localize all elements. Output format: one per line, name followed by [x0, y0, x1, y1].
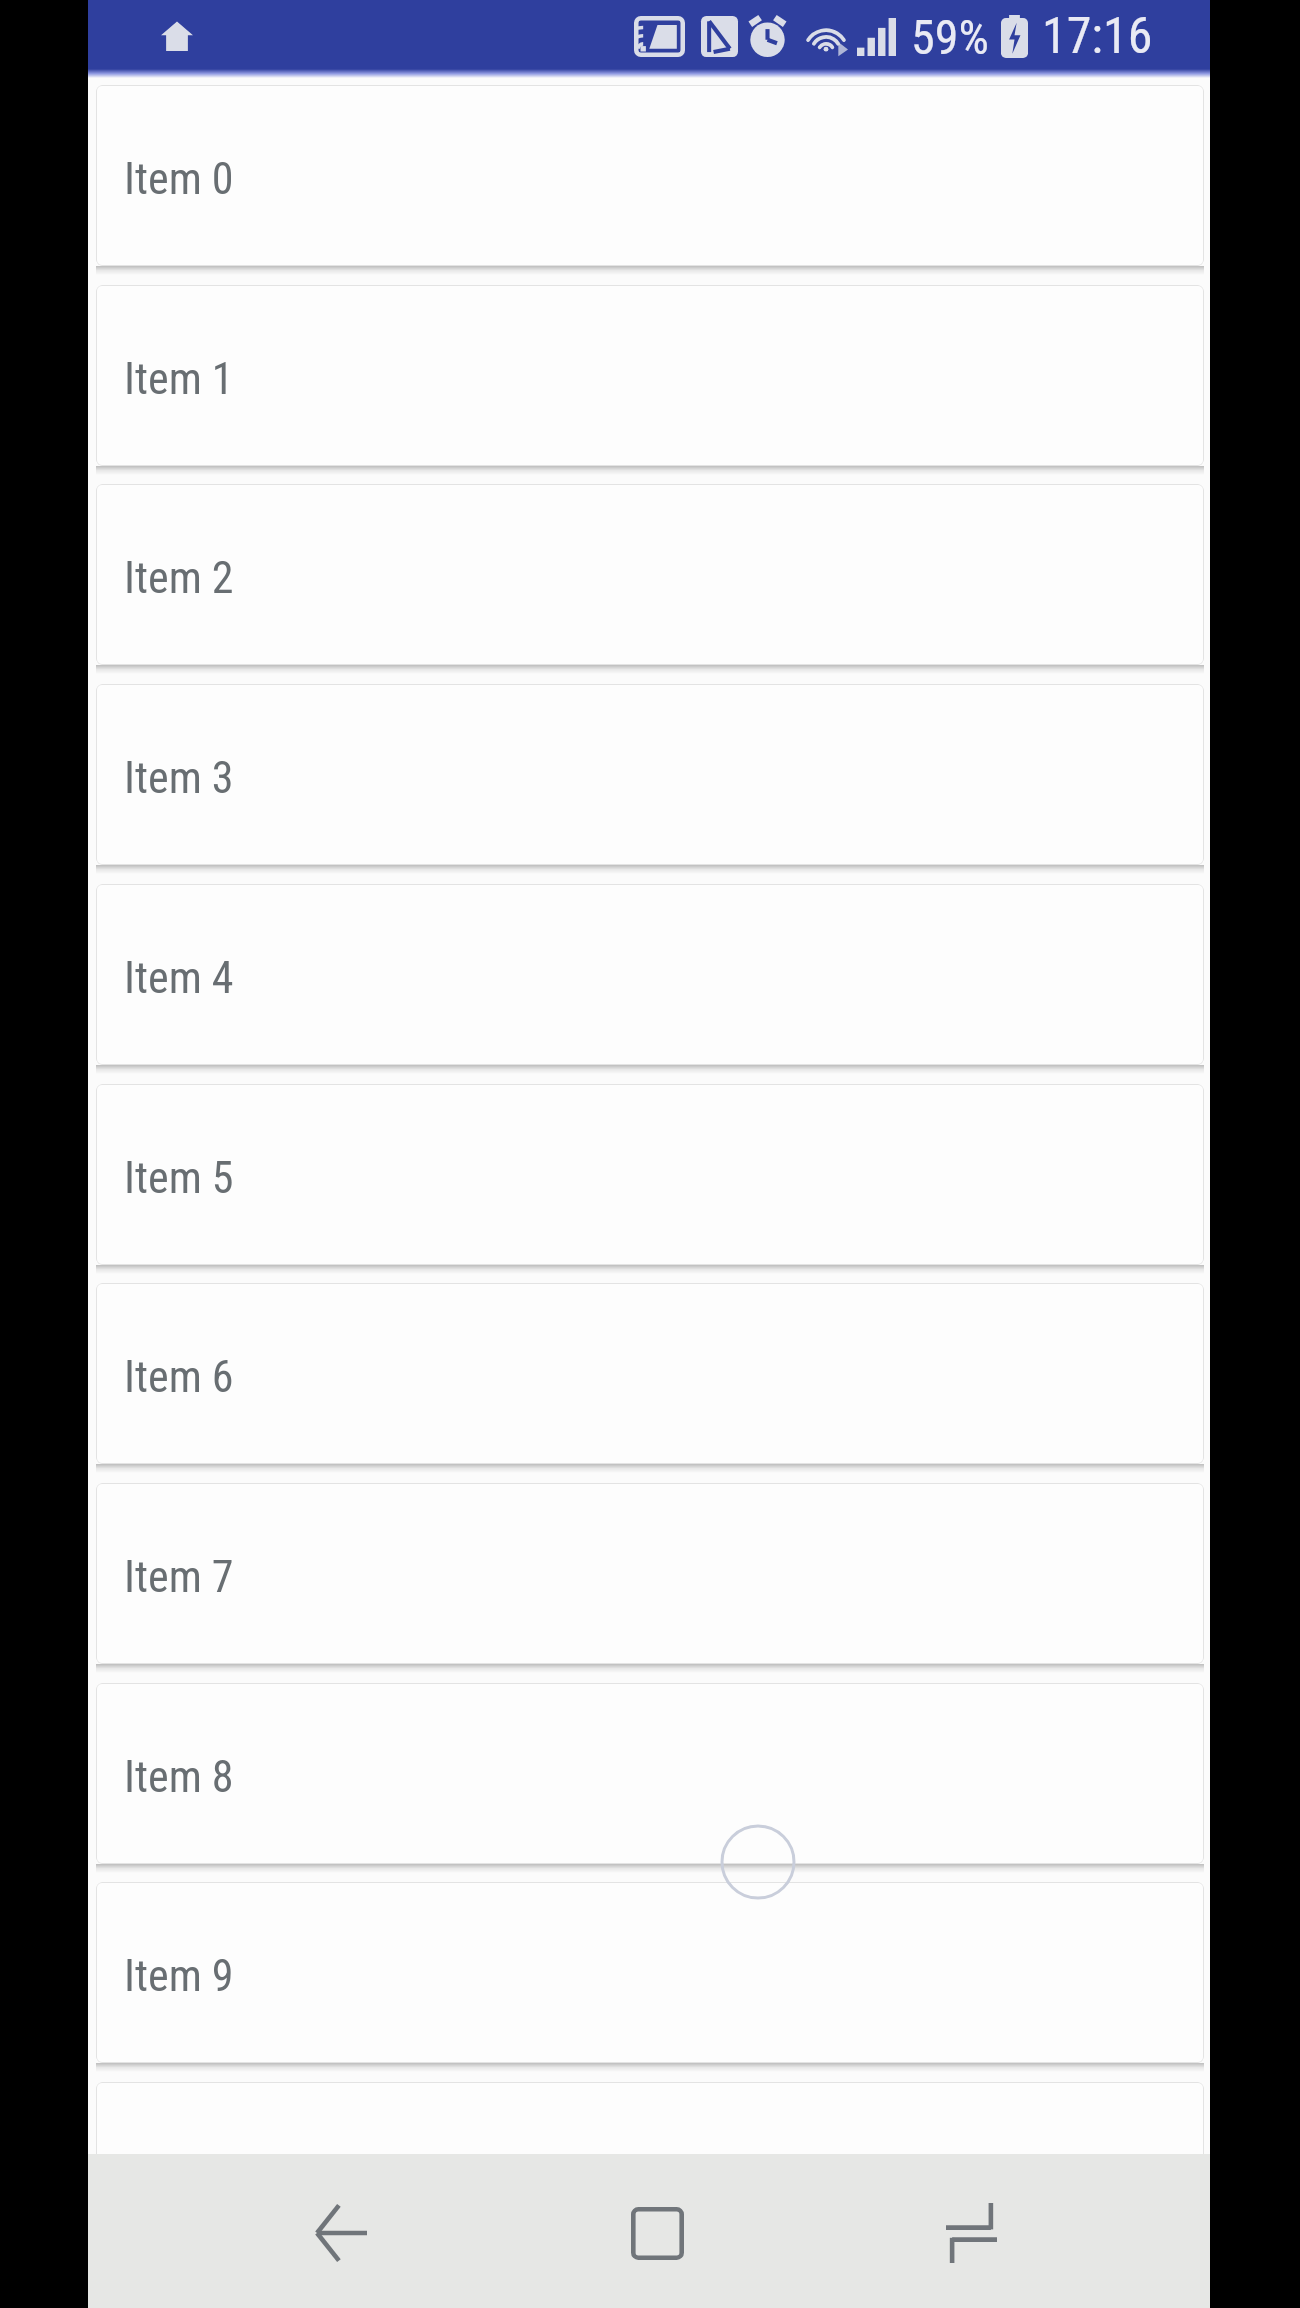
- staticText: Item 3: [124, 752, 234, 804]
- staticText: Item 8: [124, 1751, 234, 1803]
- staticText: Item 0: [124, 153, 234, 205]
- button[interactable]: Item 3: [96, 684, 1204, 865]
- button[interactable]: Item 8: [96, 1683, 1204, 1864]
- staticText: Item 9: [124, 1950, 234, 2002]
- button[interactable]: Item 2: [96, 484, 1204, 665]
- button[interactable]: Recent apps: [911, 2173, 1031, 2293]
- staticText: Item 7: [124, 1551, 234, 1603]
- staticText: Item 4: [124, 952, 234, 1004]
- button[interactable]: Item 7: [96, 1483, 1204, 1664]
- button[interactable]: Home: [597, 2173, 717, 2293]
- staticText: Item 1: [124, 353, 234, 405]
- button[interactable]: Item 5: [96, 1084, 1204, 1265]
- button[interactable]: Item 4: [96, 884, 1204, 1065]
- staticText: Item 5: [124, 1152, 234, 1204]
- staticText: 17:16: [1042, 7, 1153, 66]
- staticText: Item 2: [124, 552, 234, 604]
- button[interactable]: Item 0: [96, 85, 1204, 266]
- staticText: 59%: [911, 9, 989, 65]
- button[interactable]: Item 6: [96, 1283, 1204, 1464]
- button[interactable]: Item 9: [96, 1882, 1204, 2063]
- staticText: Item 6: [124, 1351, 234, 1403]
- button[interactable]: Back: [281, 2173, 401, 2293]
- button[interactable]: Item 1: [96, 285, 1204, 466]
- button[interactable]: Item 10: [96, 2082, 1204, 2154]
